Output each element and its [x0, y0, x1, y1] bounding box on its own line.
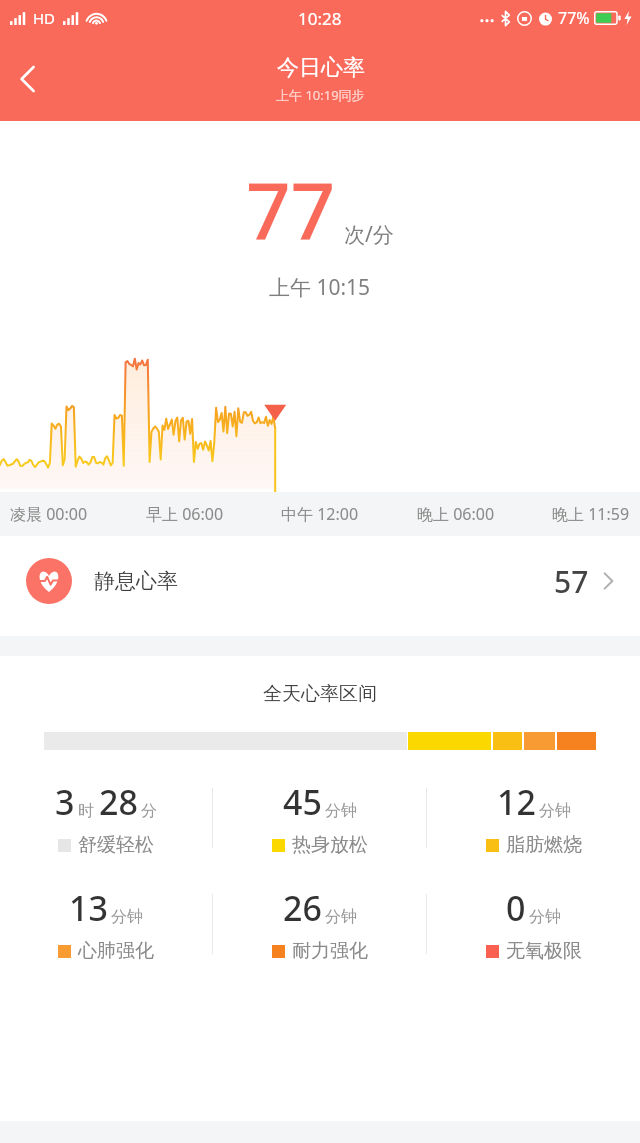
staticText: 今日心率 [277, 54, 365, 82]
staticText: 上午 10:15 [269, 273, 371, 302]
staticText: 舒缓轻松 [78, 833, 154, 857]
staticText: 77% [558, 7, 590, 29]
staticText: 耐力强化 [292, 939, 368, 963]
staticText: 次/分 [344, 220, 394, 249]
button[interactable]: 45 [213, 779, 426, 857]
staticText: 心肺强化 [78, 939, 154, 963]
staticText: 分钟 [325, 801, 357, 821]
staticText: 晚上 11:59 [552, 503, 630, 525]
staticText: 3 [55, 779, 75, 825]
staticText: 中午 12:00 [281, 503, 359, 525]
staticText: 静息心率 [94, 568, 178, 594]
staticText: 13 [69, 885, 108, 931]
staticText: 26 [283, 885, 322, 931]
staticText: 28 [99, 779, 138, 825]
staticText: 凌晨 00:00 [10, 503, 88, 525]
staticText: 分钟 [539, 801, 571, 821]
staticText: 12 [497, 779, 536, 825]
staticText: 热身放松 [292, 833, 368, 857]
button[interactable]: 12 [427, 779, 640, 857]
staticText: 45 [283, 779, 322, 825]
staticText: 分钟 [325, 907, 357, 927]
staticText: 分钟 [529, 907, 561, 927]
staticText: 脂肪燃烧 [506, 833, 582, 857]
staticText: 57 [554, 561, 589, 602]
staticText: 77 [246, 157, 336, 263]
staticText: 全天心率区间 [0, 682, 640, 706]
staticText: 时 [78, 801, 94, 821]
staticText: 早上 06:00 [146, 503, 224, 525]
staticText: 0 [506, 885, 526, 931]
button[interactable]: 13 [0, 885, 212, 963]
button[interactable]: 3 [0, 779, 212, 857]
staticText: HD [33, 8, 56, 28]
staticText: 分钟 [111, 907, 143, 927]
staticText: 上午 10:19同步 [276, 86, 365, 104]
staticText: 晚上 06:00 [417, 503, 495, 525]
staticText: 10:28 [298, 7, 342, 30]
staticText: 分 [141, 801, 157, 821]
staticText: 无氧极限 [506, 939, 582, 963]
button[interactable]: Back [0, 51, 56, 107]
button[interactable]: 静息心率 [0, 536, 640, 626]
button[interactable]: 26 [213, 885, 426, 963]
button[interactable]: 0 [427, 885, 640, 963]
